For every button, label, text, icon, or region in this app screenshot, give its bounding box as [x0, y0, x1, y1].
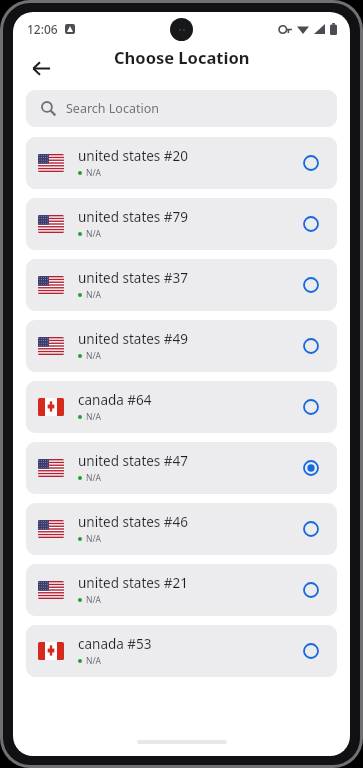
- staticText: united states #49: [78, 330, 189, 348]
- staticText: united states #47: [78, 452, 189, 470]
- staticText: N/A: [86, 350, 102, 362]
- staticText: united states #20: [78, 147, 189, 165]
- button[interactable]: Search Location: [26, 90, 337, 127]
- staticText: N/A: [86, 289, 102, 301]
- button[interactable]: Back: [21, 48, 61, 88]
- button[interactable]: canada #64: [26, 381, 337, 433]
- staticText: N/A: [86, 228, 102, 240]
- staticText: N/A: [86, 472, 102, 484]
- button[interactable]: canada #53: [26, 625, 337, 677]
- staticText: united states #37: [78, 269, 189, 287]
- staticText: N/A: [86, 594, 102, 606]
- button[interactable]: united states #21: [26, 564, 337, 616]
- staticText: canada #64: [78, 391, 152, 409]
- staticText: canada #53: [78, 635, 152, 653]
- button[interactable]: united states #46: [26, 503, 337, 555]
- staticText: Choose Location: [114, 46, 250, 68]
- button[interactable]: united states #49: [26, 320, 337, 372]
- staticText: united states #79: [78, 208, 189, 226]
- staticText: united states #21: [78, 574, 189, 592]
- button[interactable]: united states #20: [26, 137, 337, 189]
- staticText: united states #46: [78, 513, 189, 531]
- staticText: Search Location: [66, 100, 159, 117]
- button[interactable]: united states #79: [26, 198, 337, 250]
- staticText: N/A: [86, 533, 102, 545]
- button[interactable]: united states #37: [26, 259, 337, 311]
- staticText: 12:06: [27, 21, 58, 37]
- staticText: N/A: [86, 655, 102, 667]
- button[interactable]: united states #47: [26, 442, 337, 494]
- staticText: N/A: [86, 411, 102, 423]
- staticText: N/A: [86, 167, 102, 179]
